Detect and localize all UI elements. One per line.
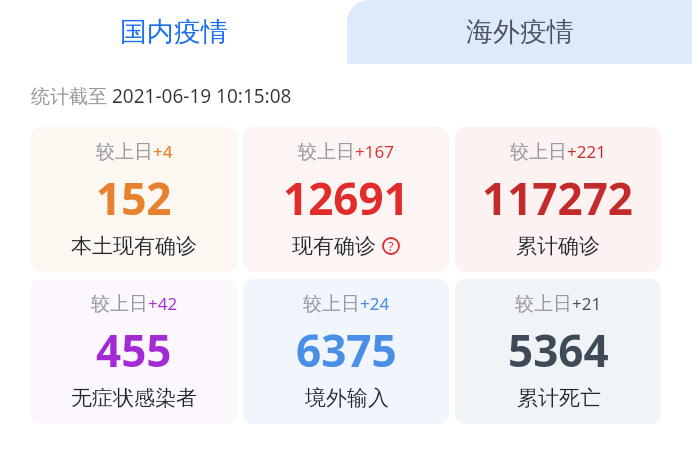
staticText: 统计截至 2021-06-19 10:15:08: [31, 83, 292, 109]
staticText: 无症状感染者: [71, 385, 197, 411]
staticText: 较上日+24: [303, 292, 390, 316]
staticText: 6375: [296, 320, 397, 380]
staticText: 较上日+221: [510, 140, 606, 164]
button[interactable]: 海外疫情: [347, 0, 692, 64]
staticText: 5364: [508, 320, 609, 380]
button[interactable]: 较上日+221: [455, 127, 661, 272]
staticText: 12691: [283, 168, 409, 228]
staticText: 国内疫情: [120, 15, 228, 49]
staticText: 本土现有确诊: [71, 233, 197, 259]
staticText: 境外输入: [305, 385, 389, 411]
staticText: 累计确诊: [516, 233, 600, 259]
staticText: 累计死亡: [517, 385, 601, 411]
button[interactable]: 较上日+21: [455, 279, 661, 424]
button[interactable]: 较上日+24: [243, 279, 449, 424]
staticText: 455: [96, 320, 172, 380]
button[interactable]: 较上日+42: [31, 279, 237, 424]
staticText: 152: [96, 168, 172, 228]
staticText: 海外疫情: [466, 15, 574, 49]
button[interactable]: 国内疫情: [0, 0, 347, 64]
staticText: 较上日+42: [91, 292, 178, 316]
staticText: 117272: [482, 168, 634, 228]
staticText: 现有确诊: [292, 233, 376, 259]
staticText: 较上日+167: [298, 140, 394, 164]
button[interactable]: 较上日+4: [31, 127, 237, 272]
button[interactable]: 说明: [382, 237, 400, 255]
button[interactable]: 较上日+167: [243, 127, 449, 272]
staticText: 较上日+21: [515, 292, 602, 316]
staticText: ?: [388, 237, 394, 255]
staticText: 较上日+4: [96, 140, 173, 164]
